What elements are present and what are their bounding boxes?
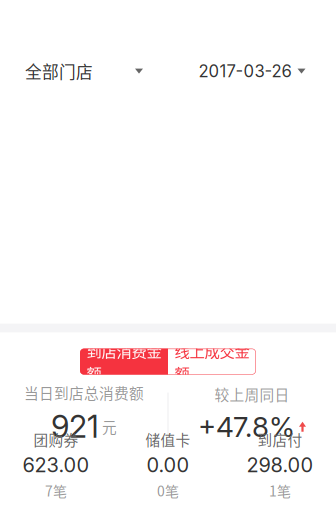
button[interactable]: 全部门店 [0, 56, 168, 86]
staticText: 元 [102, 416, 117, 437]
staticText: 298.00 [246, 453, 313, 477]
staticText: 当日到店总消费额 [24, 382, 144, 403]
staticText: 7笔 [45, 480, 67, 500]
button[interactable]: 2017-03-26 [168, 56, 336, 86]
staticText: 2017-03-26 [198, 61, 291, 81]
staticText: 0.00 [146, 453, 189, 477]
staticText: 全部门店 [25, 59, 93, 83]
staticText: +47.8% [198, 410, 295, 444]
staticText: 到店消费金额 [86, 339, 161, 384]
staticText: 线上成交金额 [174, 339, 249, 384]
staticText: 较上周同日 [214, 383, 289, 405]
staticText: 团购券 [33, 429, 78, 450]
staticText: 储值卡 [145, 429, 190, 450]
staticText: 到店付 [257, 429, 302, 450]
staticText: 623.00 [22, 453, 89, 477]
staticText: 921 [51, 408, 99, 445]
button[interactable]: 线上成交金额 [168, 349, 256, 375]
button[interactable]: 到店消费金额 [80, 349, 168, 375]
staticText: 0笔 [157, 480, 179, 500]
staticText: 1笔 [269, 480, 291, 500]
